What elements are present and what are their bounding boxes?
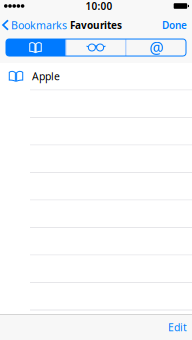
button[interactable]: Bookmarks — [5, 39, 65, 56]
staticText: Done — [162, 18, 187, 32]
staticText: @ — [149, 37, 163, 58]
button[interactable]: Reading List — [66, 39, 125, 56]
staticText: Edit — [168, 320, 187, 334]
button[interactable]: Bookmarks — [0, 12, 71, 37]
staticText: Apple — [32, 69, 60, 83]
staticText: 10:00 — [85, 0, 112, 13]
button[interactable] — [0, 200, 192, 228]
button[interactable]: Apple — [0, 63, 192, 90]
button[interactable] — [0, 145, 192, 173]
staticText: Bookmarks — [11, 18, 67, 32]
button[interactable]: Shared Links — [126, 39, 186, 56]
button[interactable] — [0, 255, 192, 283]
button[interactable]: Done — [158, 12, 192, 37]
button[interactable] — [0, 90, 192, 118]
button[interactable]: Edit — [160, 315, 192, 340]
staticText: Favourites — [70, 18, 122, 32]
